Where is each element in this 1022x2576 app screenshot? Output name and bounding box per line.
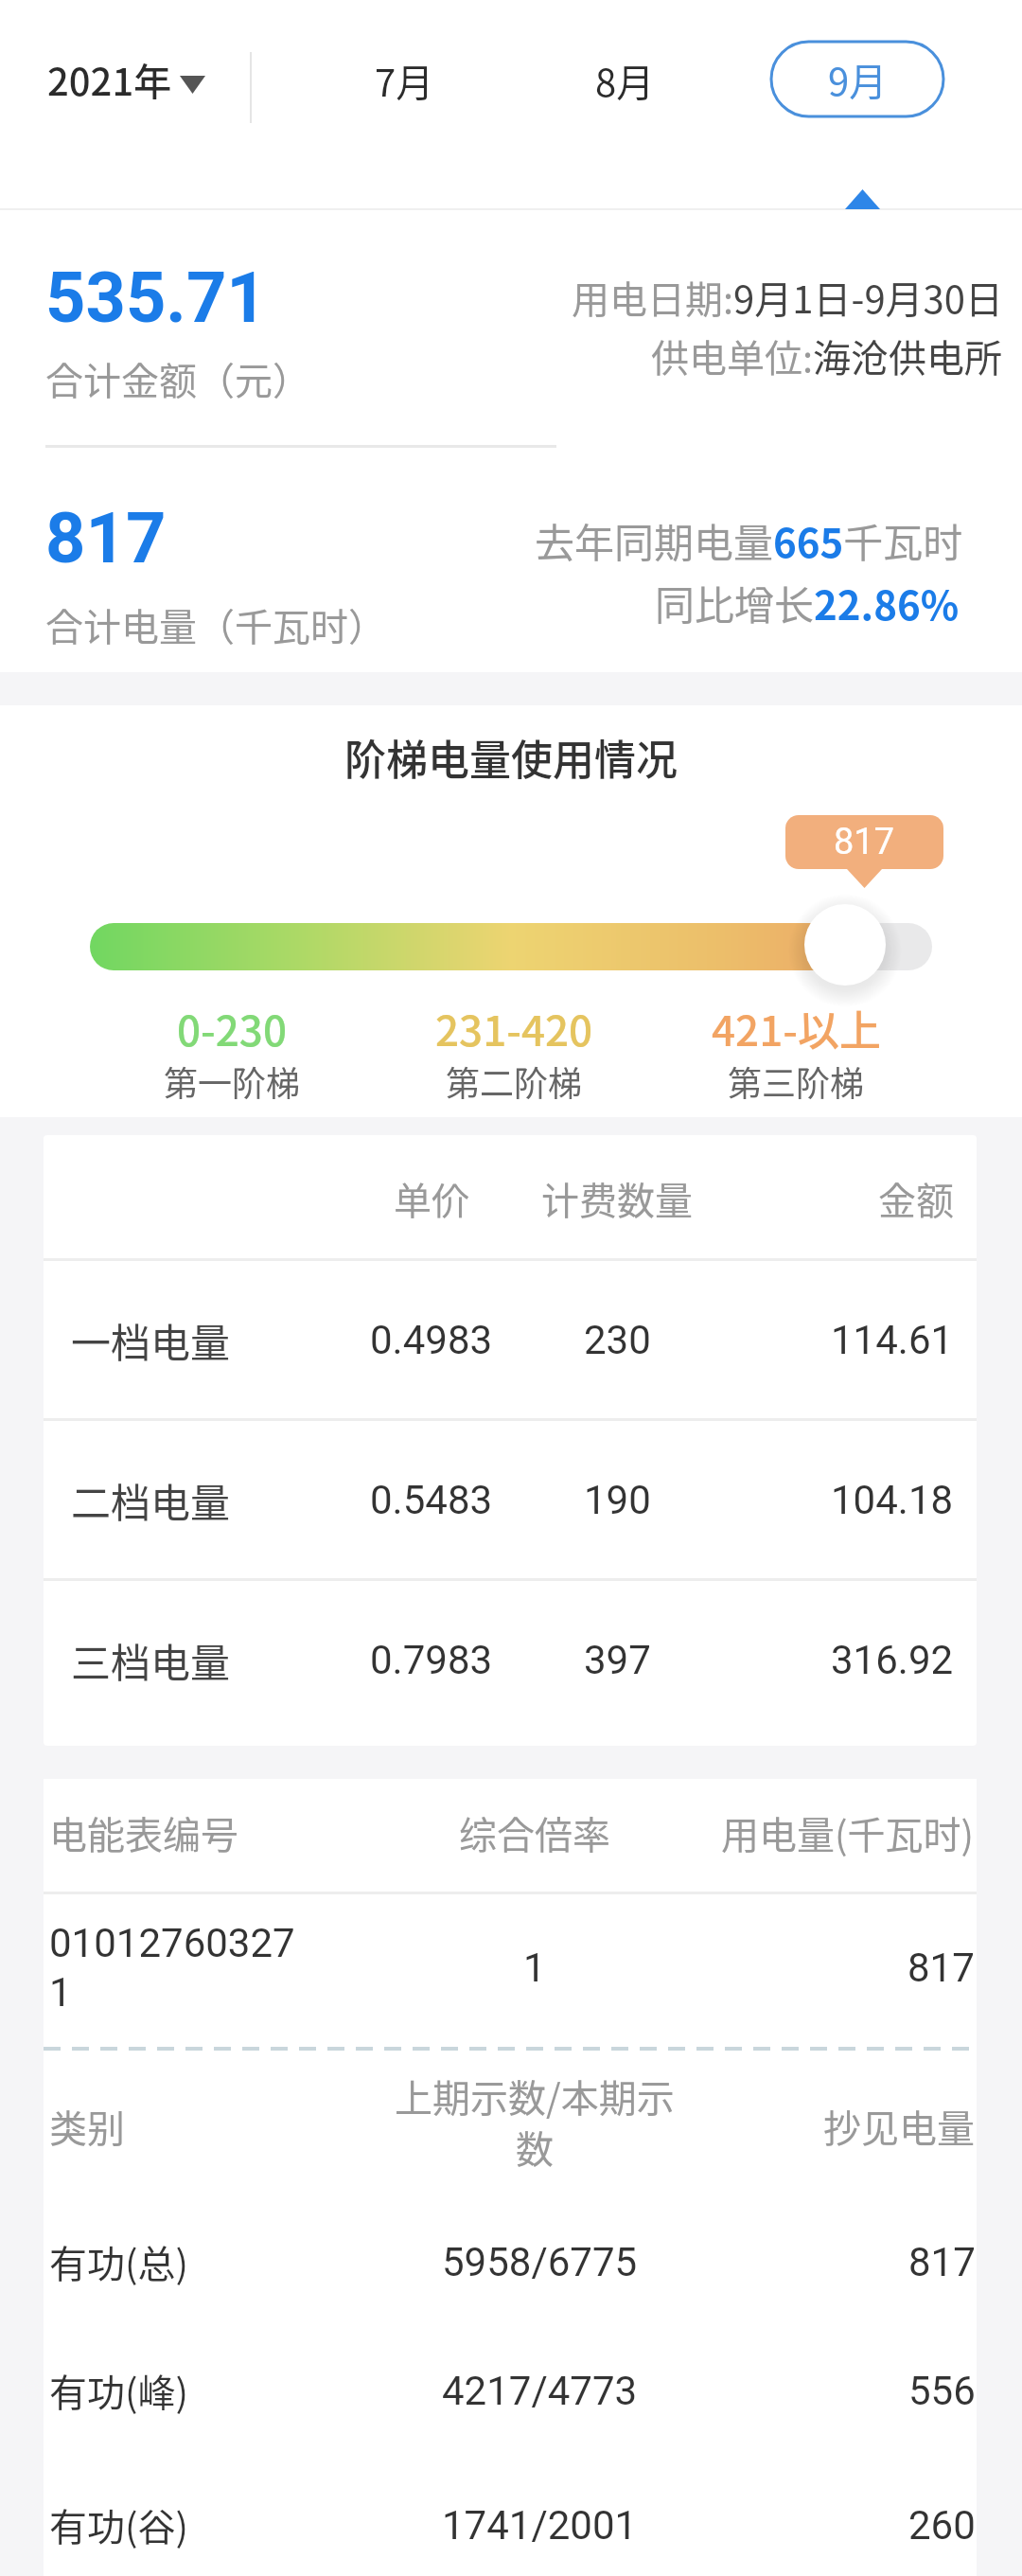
staticText: 190 — [584, 1477, 651, 1523]
staticText: 类别 — [49, 2099, 125, 2154]
staticText: 5958/6775 — [442, 2239, 638, 2285]
staticText: 合计金额（元） — [45, 351, 310, 406]
staticText: 397 — [584, 1637, 651, 1683]
staticText: 8月 — [595, 53, 655, 108]
staticText: 有功(谷) — [49, 2497, 189, 2552]
staticText: 316.92 — [831, 1637, 954, 1683]
staticText: 供电单位:海沧供电所 — [651, 329, 1003, 383]
staticText: 421-以上 — [712, 998, 881, 1058]
button[interactable] — [771, 42, 943, 116]
staticText: 0.5483 — [370, 1477, 493, 1523]
staticText: 1 — [49, 1969, 72, 2016]
staticText: 抄见电量 — [823, 2099, 975, 2154]
staticText: 三档电量 — [71, 1631, 231, 1689]
staticText: 电能表编号 — [49, 1805, 238, 1860]
staticText: 4217/4773 — [442, 2368, 638, 2414]
staticText: 817 — [834, 821, 895, 863]
staticText: 260 — [908, 2502, 976, 2549]
staticText: 0.7983 — [370, 1637, 493, 1683]
staticText: 阶梯电量使用情况 — [344, 727, 678, 788]
staticText: 第二阶梯 — [446, 1057, 583, 1106]
staticText: 0-230 — [177, 998, 288, 1058]
staticText: 计费数量 — [541, 1171, 693, 1226]
staticText: 合计电量（千瓦时） — [45, 597, 386, 652]
staticText: 231-420 — [435, 998, 593, 1058]
staticText: 有功(总) — [49, 2234, 189, 2289]
button[interactable] — [0, 38, 284, 123]
staticText: 二档电量 — [71, 1471, 231, 1529]
staticText: 2021年 — [47, 52, 172, 107]
staticText: 9月 — [828, 52, 888, 107]
staticText: 0.4983 — [370, 1317, 493, 1363]
staticText: 去年同期电量665千瓦时 — [535, 511, 963, 569]
staticText: 535.71 — [45, 257, 267, 339]
staticText: 第三阶梯 — [728, 1057, 865, 1106]
staticText: 556 — [908, 2368, 976, 2414]
staticText: 817 — [45, 497, 167, 579]
staticText: 7月 — [375, 53, 434, 108]
staticText: 一档电量 — [71, 1311, 231, 1369]
staticText: 230 — [584, 1317, 651, 1363]
staticText: 104.18 — [831, 1477, 954, 1523]
staticText: 01012760327 — [49, 1920, 295, 1966]
button[interactable] — [341, 38, 467, 123]
staticText: 金额 — [878, 1171, 954, 1226]
staticText: 817 — [908, 2239, 976, 2285]
staticText: 817 — [907, 1945, 975, 1991]
staticText: 单价 — [394, 1171, 469, 1226]
staticText: 综合倍率 — [459, 1805, 610, 1860]
staticText: 同比增长22.86% — [655, 574, 960, 631]
staticText: 1 — [523, 1945, 546, 1991]
staticText: 第一阶梯 — [164, 1057, 301, 1106]
staticText: 114.61 — [831, 1317, 954, 1363]
staticText: 有功(峰) — [49, 2363, 189, 2418]
staticText: 1741/2001 — [442, 2502, 638, 2549]
staticText: 上期示数/本期示 — [395, 2069, 675, 2123]
staticText: 数 — [516, 2120, 554, 2175]
staticText: 用电量(千瓦时) — [721, 1805, 975, 1860]
staticText: 用电日期:9月1日-9月30日 — [572, 270, 1003, 325]
button[interactable] — [561, 38, 688, 123]
